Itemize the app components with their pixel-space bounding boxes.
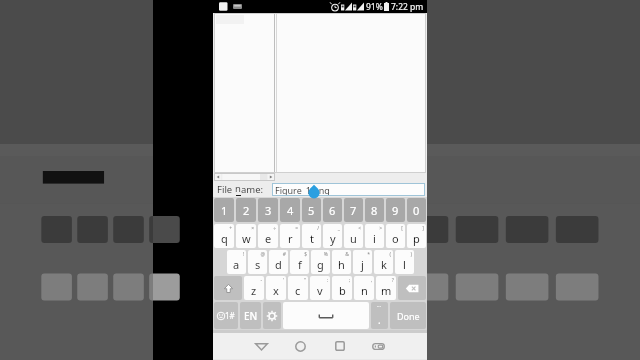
staticText: . <box>378 313 381 327</box>
staticText: , <box>370 277 372 284</box>
button[interactable]: ; <box>332 276 352 300</box>
staticText: m <box>381 283 392 298</box>
button[interactable]: Figure_1.png <box>272 183 425 196</box>
button[interactable]: ) <box>395 250 414 274</box>
staticText: ) <box>410 251 412 258</box>
staticText: ? <box>391 277 394 284</box>
button[interactable]: 2 <box>236 198 256 222</box>
button[interactable]: ' <box>266 276 286 300</box>
staticText: w <box>242 231 251 246</box>
staticText: = <box>295 225 298 232</box>
staticText: a <box>233 257 240 272</box>
staticText: x <box>273 283 279 298</box>
button[interactable]: - <box>244 276 264 300</box>
button[interactable]: / <box>302 224 321 248</box>
staticText: 91% <box>366 1 383 13</box>
button[interactable]: ÷ <box>258 224 278 248</box>
staticText: c <box>295 283 301 298</box>
staticText: d <box>275 257 282 272</box>
button[interactable]: Symbols <box>214 302 238 329</box>
button[interactable]: Home <box>281 333 320 359</box>
button[interactable]: 9 <box>386 198 405 222</box>
button[interactable]: % <box>311 250 330 274</box>
staticText: q <box>221 231 228 246</box>
staticText: f <box>298 257 302 272</box>
button[interactable]: Shift <box>214 276 242 300</box>
staticText: > <box>379 225 382 232</box>
button[interactable]: 6 <box>323 198 342 222</box>
staticText: - <box>260 277 262 284</box>
button[interactable]: 4 <box>280 198 300 222</box>
button[interactable]: Done <box>390 302 426 329</box>
staticText: t <box>310 231 314 246</box>
button[interactable]: Keyboard settings <box>263 302 281 329</box>
staticText: k <box>381 257 387 272</box>
button[interactable]: × <box>236 224 256 248</box>
staticText: o <box>392 231 399 246</box>
staticText: 9 <box>392 203 399 218</box>
button[interactable]: * <box>353 250 372 274</box>
staticText: ; <box>348 277 350 284</box>
button[interactable]: ] <box>407 224 426 248</box>
button[interactable]: & <box>332 250 351 274</box>
button[interactable]: Switch keyboard <box>359 333 398 359</box>
button[interactable]: Hide keyboard <box>242 333 281 359</box>
staticText: h <box>338 257 345 272</box>
staticText: & <box>345 251 349 258</box>
button[interactable]: # <box>269 250 288 274</box>
button[interactable]: , <box>354 276 374 300</box>
button[interactable]: _ <box>323 224 342 248</box>
button[interactable]: > <box>365 224 384 248</box>
staticText: b <box>339 283 346 298</box>
button[interactable]: : <box>310 276 330 300</box>
button[interactable]: [ <box>386 224 405 248</box>
staticText: g <box>317 257 324 272</box>
button[interactable]: " <box>288 276 308 300</box>
staticText: 0 <box>413 203 420 218</box>
button[interactable]: 5 <box>302 198 321 222</box>
button[interactable]: Recent apps <box>320 333 359 359</box>
button[interactable]: 3 <box>258 198 278 222</box>
button[interactable]: Backspace <box>398 276 426 300</box>
staticText: 5 <box>308 203 315 218</box>
staticText: Done <box>397 310 420 322</box>
button[interactable]: = <box>280 224 300 248</box>
staticText: : <box>326 277 328 284</box>
staticText: j <box>361 257 364 272</box>
staticText: s <box>255 257 261 272</box>
staticText: l <box>403 257 406 272</box>
staticText: ] <box>422 225 424 232</box>
staticText: 7:22 pm <box>391 1 424 13</box>
button[interactable]: 0 <box>407 198 426 222</box>
button[interactable]: ··· <box>371 302 388 329</box>
staticText: z <box>251 283 257 298</box>
staticText: + <box>229 225 232 232</box>
button[interactable]: 7 <box>344 198 363 222</box>
staticText: e <box>265 231 272 246</box>
staticText: < <box>358 225 361 232</box>
button[interactable]: ? <box>376 276 396 300</box>
staticText: Figure_1.png <box>275 184 330 196</box>
button[interactable]: + <box>214 224 234 248</box>
staticText: 7 <box>350 203 357 218</box>
staticText: v <box>317 283 323 298</box>
staticText: 2 <box>243 203 250 218</box>
staticText: r <box>288 231 293 246</box>
staticText: $ <box>304 251 307 258</box>
button[interactable]: @ <box>248 250 267 274</box>
staticText: ··· <box>377 303 382 310</box>
staticText: 3 <box>265 203 272 218</box>
button[interactable]: 1 <box>214 198 234 222</box>
button[interactable]: ! <box>227 250 246 274</box>
button[interactable]: ( <box>374 250 393 274</box>
button[interactable]: Space <box>283 302 369 329</box>
staticText: n <box>235 182 241 195</box>
staticText: 1 <box>221 203 228 218</box>
button[interactable]: 8 <box>365 198 384 222</box>
staticText: ÷ <box>273 225 276 232</box>
button[interactable]: < <box>344 224 363 248</box>
staticText: n <box>361 283 368 298</box>
button[interactable]: $ <box>290 250 309 274</box>
staticText: EN <box>244 309 258 323</box>
button[interactable]: EN <box>240 302 261 329</box>
